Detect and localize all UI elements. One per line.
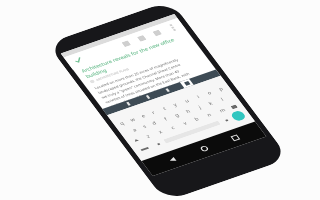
button[interactable]: h <box>178 104 198 119</box>
button[interactable]: d <box>145 116 164 131</box>
button[interactable]: l <box>212 92 232 107</box>
staticText: f <box>162 116 170 122</box>
staticText: q <box>117 119 127 127</box>
button[interactable]: c <box>162 120 183 136</box>
staticText: r <box>149 109 158 116</box>
button[interactable]: o <box>199 85 220 101</box>
staticText: p <box>216 85 226 93</box>
button[interactable]: Recents <box>225 130 245 146</box>
button[interactable]: i <box>188 89 208 105</box>
button[interactable]: z <box>137 128 158 145</box>
staticText: d <box>150 119 159 127</box>
button[interactable]: m <box>211 102 233 119</box>
staticText: u <box>182 97 192 105</box>
button[interactable]: Symbols <box>135 141 154 156</box>
staticText: k <box>207 100 215 107</box>
button[interactable]: k <box>201 96 221 111</box>
button[interactable]: B <box>120 98 136 110</box>
button[interactable]: q <box>113 116 132 131</box>
button[interactable]: f <box>155 111 175 127</box>
staticText: e <box>139 112 148 120</box>
button[interactable]: r <box>144 105 163 120</box>
button[interactable]: Home <box>194 141 214 156</box>
button[interactable]: Format <box>179 77 194 90</box>
staticText: an abundance of flowers that line the wa… <box>107 67 188 117</box>
staticText: a <box>130 126 139 134</box>
button[interactable]: U <box>159 84 175 96</box>
button[interactable]: Enter <box>228 108 248 124</box>
staticText: we truly a "green" community. More than … <box>100 58 181 110</box>
staticText: t <box>161 105 168 112</box>
button[interactable]: u <box>177 93 197 109</box>
staticText: w <box>128 116 137 124</box>
button[interactable]: g <box>167 107 187 123</box>
button[interactable]: x <box>150 124 171 140</box>
staticText: b <box>192 115 202 123</box>
button[interactable]: t <box>154 101 174 117</box>
button[interactable]: Back <box>162 152 182 168</box>
button[interactable]: Action <box>146 25 166 41</box>
staticText: x <box>156 128 165 136</box>
staticText: Located on more than 20 acres of magnifi… <box>93 46 180 101</box>
button[interactable]: n <box>199 107 220 123</box>
button[interactable]: Space <box>163 113 221 151</box>
button[interactable]: a <box>124 123 143 138</box>
button[interactable]: Done <box>70 54 86 66</box>
button[interactable]: Action <box>115 36 136 51</box>
staticText: i <box>195 93 202 100</box>
staticText: ARCHITECTURE PLANS <box>95 63 131 86</box>
button[interactable]: b <box>187 111 208 127</box>
staticText: g <box>172 111 182 119</box>
staticText: Architecture reveals for the new office … <box>79 19 191 93</box>
staticText: z <box>144 133 153 140</box>
staticText: j <box>196 104 204 111</box>
staticText: h <box>184 107 194 115</box>
button[interactable]: Comma <box>153 140 162 147</box>
button[interactable]: e <box>133 109 152 124</box>
staticText: landscaped grounds, the Channel Sheet Ce… <box>96 51 183 106</box>
button[interactable]: I <box>140 91 155 103</box>
button[interactable]: w <box>123 112 142 127</box>
staticText: o <box>205 89 215 97</box>
button[interactable]: p <box>211 81 231 97</box>
staticText: v <box>181 120 190 127</box>
staticText: n <box>205 111 214 119</box>
staticText: y <box>171 101 180 109</box>
button[interactable]: s <box>135 119 154 134</box>
staticText: c <box>169 124 177 131</box>
button[interactable]: Period <box>221 117 230 124</box>
staticText: m <box>217 106 228 115</box>
button[interactable]: More options <box>162 19 182 35</box>
button[interactable]: Backspace <box>225 99 243 113</box>
button[interactable]: Shift <box>127 133 145 148</box>
button[interactable]: v <box>174 115 195 132</box>
staticText: s <box>140 123 149 130</box>
staticText: l <box>219 96 226 103</box>
button[interactable]: Action <box>131 30 151 46</box>
button[interactable]: y <box>165 97 185 113</box>
staticText: varieties of trees situated on the East … <box>103 60 192 116</box>
button[interactable]: j <box>189 100 210 115</box>
